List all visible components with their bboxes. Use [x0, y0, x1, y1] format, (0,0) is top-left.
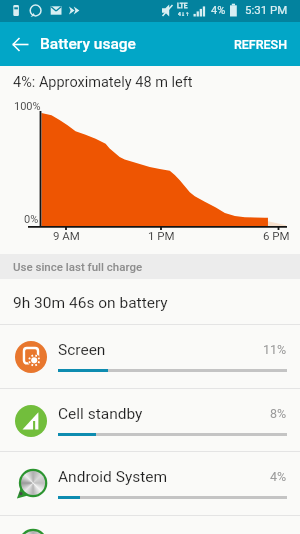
staticText: Android System — [58, 468, 168, 486]
staticText: Cell standby — [58, 405, 143, 423]
staticText: 9h 30m 46s on battery — [13, 294, 168, 312]
staticText: 9 AM — [53, 229, 80, 242]
staticText: 0% — [24, 213, 39, 226]
staticText: 4↓↑ — [178, 11, 190, 17]
staticText: 100% — [14, 100, 41, 113]
button[interactable]: Navigate up — [0, 22, 40, 66]
button[interactable]: Cell standby — [0, 389, 300, 452]
staticText: 5:31 PM — [245, 3, 288, 16]
staticText: 8% — [270, 406, 287, 421]
staticText: 4%: Approximately 48 m left — [13, 74, 193, 91]
staticText: Battery usage — [40, 35, 136, 53]
staticText: Use since last full charge — [13, 260, 143, 273]
staticText: 11% — [263, 342, 287, 357]
staticText: 6 PM — [263, 229, 290, 242]
button[interactable]: Screen — [0, 325, 300, 388]
button[interactable] — [0, 516, 300, 534]
button[interactable]: REFRESH — [222, 22, 300, 66]
staticText: REFRESH — [234, 37, 288, 52]
button[interactable]: Android System — [0, 452, 300, 515]
staticText: Screen — [58, 341, 106, 359]
staticText: 4% — [211, 4, 226, 17]
staticText: 4% — [270, 469, 287, 484]
staticText: LTE — [177, 2, 188, 10]
staticText: 1 PM — [148, 229, 175, 242]
